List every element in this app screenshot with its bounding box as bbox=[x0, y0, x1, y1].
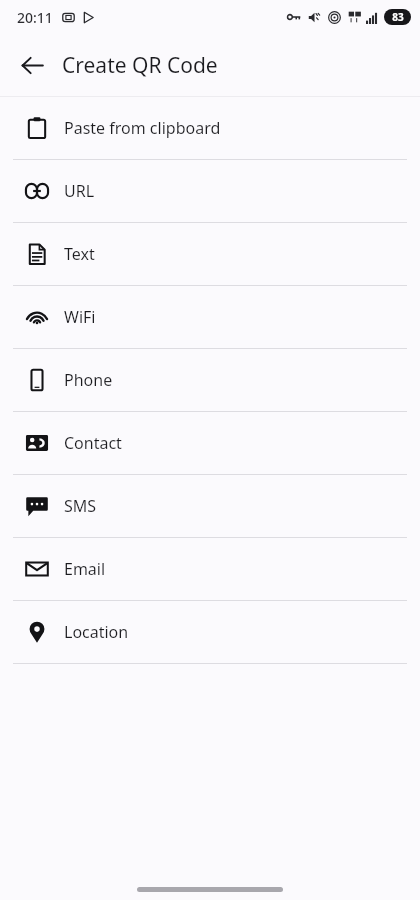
staticText: Email bbox=[64, 558, 106, 580]
button[interactable]: Phone bbox=[0, 349, 420, 411]
staticText: Location bbox=[64, 621, 129, 643]
button[interactable]: WiFi bbox=[0, 286, 420, 348]
staticText: 20:11 bbox=[17, 8, 53, 27]
staticText: 83 bbox=[392, 10, 404, 24]
button[interactable]: Contact bbox=[0, 412, 420, 474]
staticText: Phone bbox=[64, 369, 113, 391]
button[interactable]: Paste from clipboard bbox=[0, 97, 420, 159]
button[interactable]: URL bbox=[0, 160, 420, 222]
button[interactable]: Location bbox=[0, 601, 420, 663]
staticText: Paste from clipboard bbox=[64, 117, 221, 139]
staticText: SMS bbox=[64, 495, 97, 517]
button[interactable]: Text bbox=[0, 223, 420, 285]
staticText: URL bbox=[64, 180, 95, 202]
button[interactable]: SMS bbox=[0, 475, 420, 537]
staticText: WiFi bbox=[64, 306, 96, 328]
button[interactable]: Email bbox=[0, 538, 420, 600]
staticText: Text bbox=[64, 243, 95, 265]
staticText: Create QR Code bbox=[62, 51, 218, 80]
staticText: Contact bbox=[64, 432, 122, 454]
button[interactable]: Back bbox=[10, 43, 54, 87]
